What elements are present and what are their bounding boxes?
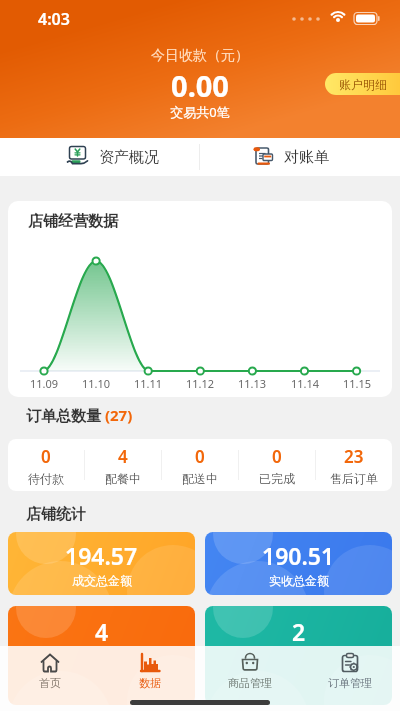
staticText: 11.09: [26, 376, 62, 391]
staticText: 0: [272, 445, 282, 468]
staticText: 待付款: [28, 471, 64, 486]
staticText: 190.51: [262, 540, 335, 571]
staticText: 配餐中: [105, 471, 141, 486]
staticText: 11.13: [234, 376, 270, 391]
staticText: 4: [95, 616, 109, 647]
staticText: 11.14: [287, 376, 323, 391]
staticText: 0: [195, 445, 205, 468]
staticText: 今日收款（元）: [0, 47, 400, 65]
staticText: 售后订单: [330, 471, 378, 486]
button[interactable]: 资产概况: [0, 138, 199, 176]
staticText: 23: [344, 445, 364, 468]
button[interactable]: 对账单: [200, 138, 400, 176]
staticText: 11.15: [339, 376, 375, 391]
staticText: 交易共0笔: [0, 103, 400, 121]
staticText: 配送中: [182, 471, 218, 486]
button[interactable]: 0: [239, 439, 315, 491]
staticText: 订单总数量 (27): [26, 405, 133, 425]
button[interactable]: 0: [8, 439, 84, 491]
button[interactable]: 商品管理: [200, 646, 300, 711]
button[interactable]: 23: [316, 439, 392, 491]
staticText: 对账单: [284, 148, 329, 167]
button[interactable]: 0: [162, 439, 238, 491]
staticText: 资产概况: [99, 148, 159, 167]
staticText: 0: [41, 445, 51, 468]
button[interactable]: 190.51: [205, 532, 392, 595]
staticText: 数据: [139, 676, 161, 690]
button[interactable]: 首页: [0, 646, 100, 711]
staticText: 0.00: [0, 66, 400, 105]
staticText: 4: [118, 445, 128, 468]
staticText: 商品管理: [228, 676, 272, 690]
staticText: 成交总金额: [72, 573, 132, 588]
staticText: 11.11: [130, 376, 166, 391]
button[interactable]: 194.57: [8, 532, 195, 595]
staticText: 2: [292, 616, 306, 647]
staticText: 11.10: [78, 376, 114, 391]
staticText: 账户明细: [339, 77, 387, 92]
staticText: 194.57: [65, 540, 138, 571]
button[interactable]: 数据: [100, 646, 200, 711]
staticText: 实收总金额: [269, 573, 329, 588]
staticText: 已完成: [259, 471, 295, 486]
staticText: 订单管理: [328, 676, 372, 690]
staticText: 店铺统计: [26, 505, 86, 524]
staticText: 4:03: [38, 8, 70, 30]
button[interactable]: 2: [205, 606, 392, 705]
button[interactable]: 4: [85, 439, 161, 491]
button[interactable]: 账户明细: [325, 73, 400, 95]
staticText: 首页: [39, 676, 61, 690]
staticText: 11.12: [182, 376, 218, 391]
button[interactable]: 4: [8, 606, 195, 705]
staticText: 店铺经营数据: [28, 212, 118, 231]
button[interactable]: 订单管理: [300, 646, 400, 711]
